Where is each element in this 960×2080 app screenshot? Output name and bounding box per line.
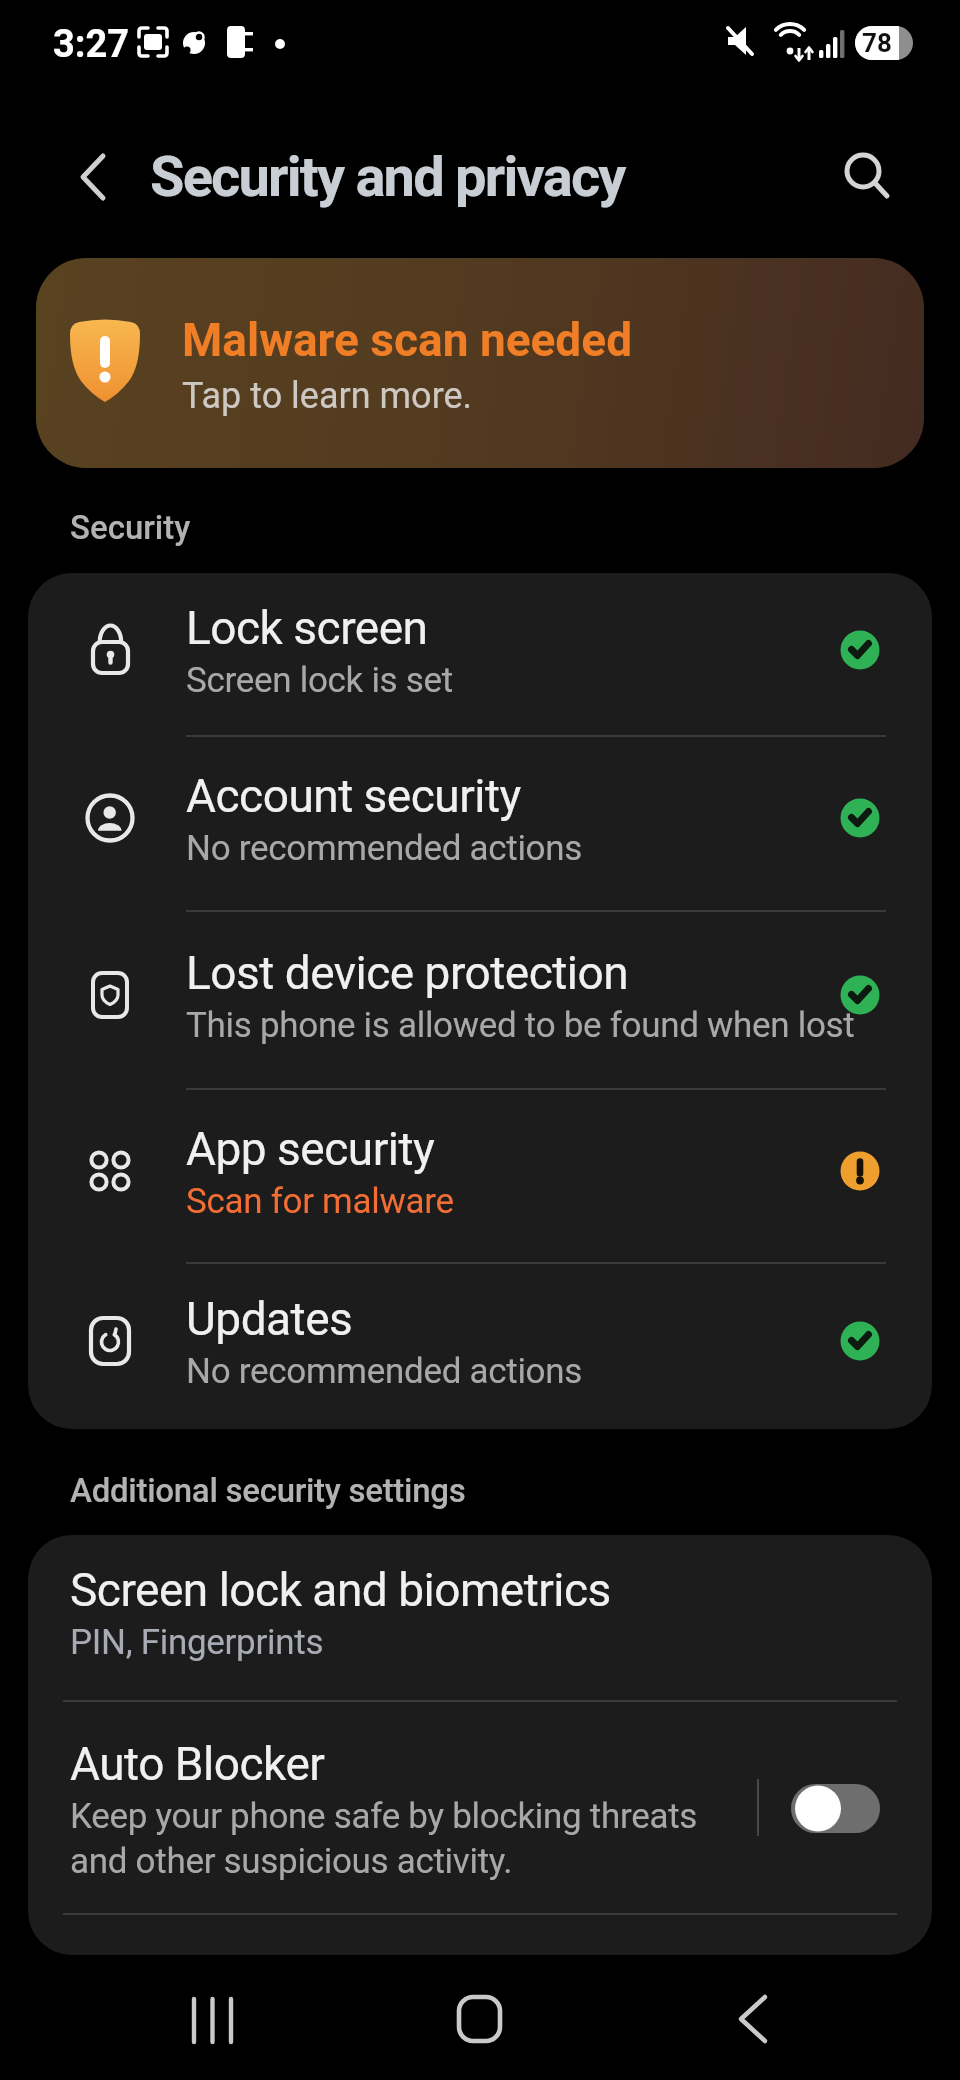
staticText: Tap to learn more. — [182, 375, 473, 417]
button[interactable]: Malware scan needed — [36, 258, 924, 468]
staticText: Updates — [186, 1292, 353, 1346]
staticText: No recommended actions — [186, 1351, 583, 1392]
staticText: Malware scan needed — [182, 313, 633, 367]
staticText: Auto Blocker — [70, 1737, 325, 1791]
staticText: Lock screen — [186, 601, 428, 655]
staticText: No recommended actions — [186, 828, 583, 869]
staticText: Additional security settings — [70, 1471, 466, 1510]
staticText: 78 — [862, 28, 892, 58]
button[interactable] — [440, 1990, 520, 2050]
staticText: Screen lock is set — [186, 660, 453, 701]
staticText: Security and privacy — [150, 144, 625, 210]
button[interactable] — [172, 1990, 252, 2050]
button[interactable] — [60, 145, 124, 209]
staticText: This phone is allowed to be found when l… — [186, 1005, 855, 1046]
staticText: Scan for malware — [186, 1181, 454, 1222]
button[interactable]: Updates — [28, 1262, 932, 1429]
button[interactable]: Account security — [28, 735, 932, 910]
staticText: Security — [70, 508, 191, 547]
staticText: Account security — [186, 769, 521, 823]
button[interactable] — [712, 1990, 792, 2050]
staticText: Lost device protection — [186, 946, 629, 1000]
staticText: Screen lock and biometrics — [70, 1563, 611, 1617]
staticText: 3:27 — [53, 22, 130, 67]
button[interactable]: Lock screen — [28, 573, 932, 735]
staticText: Keep your phone safe by blocking threats — [70, 1796, 698, 1837]
button[interactable] — [832, 140, 904, 212]
button[interactable]: Lost device protection — [28, 910, 932, 1088]
staticText: and other suspicious activity. — [70, 1841, 513, 1882]
staticText: PIN, Fingerprints — [70, 1622, 324, 1663]
staticText: App security — [186, 1122, 435, 1176]
button[interactable]: Screen lock and biometrics — [28, 1535, 932, 1700]
button[interactable] — [791, 1784, 880, 1833]
button[interactable]: Auto Blocker — [28, 1700, 932, 1913]
button[interactable]: App security — [28, 1088, 932, 1262]
